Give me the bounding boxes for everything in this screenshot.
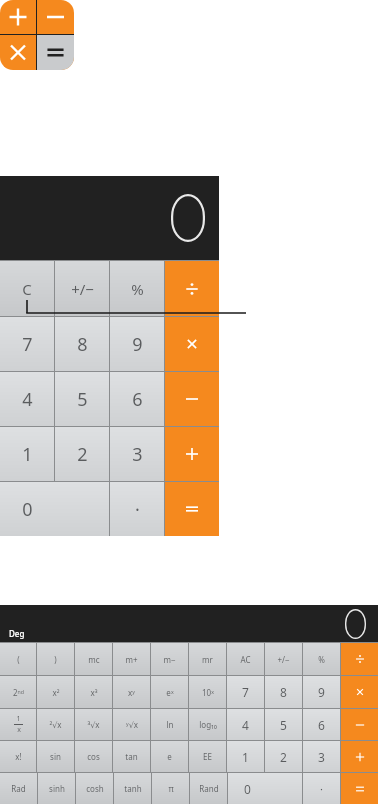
button[interactable]: 6 xyxy=(303,709,340,740)
button[interactable]: x² xyxy=(37,676,74,708)
staticText: m+ xyxy=(125,654,138,665)
button[interactable]: 2 xyxy=(55,427,109,481)
staticText: x xyxy=(17,725,21,735)
staticText: % xyxy=(318,654,325,665)
button[interactable]: tan xyxy=(113,741,150,772)
button[interactable]: mr xyxy=(189,643,226,675)
staticText: log₁₀ xyxy=(199,719,217,730)
button[interactable] xyxy=(341,643,378,675)
button[interactable] xyxy=(165,372,219,426)
button[interactable]: 9 xyxy=(110,317,164,371)
staticText: 8 xyxy=(77,332,88,357)
staticText: x³ xyxy=(90,687,98,698)
button[interactable]: 8 xyxy=(55,317,109,371)
button[interactable]: AC xyxy=(227,643,264,675)
button[interactable]: 4 xyxy=(227,709,264,740)
staticText: +/− xyxy=(71,279,94,299)
button[interactable]: 3 xyxy=(110,427,164,481)
button[interactable] xyxy=(165,317,219,371)
button[interactable]: ) xyxy=(37,643,74,675)
button[interactable]: ln xyxy=(151,709,188,740)
staticText: EE xyxy=(203,751,212,762)
staticText: ln xyxy=(166,719,174,730)
button[interactable]: 5 xyxy=(55,372,109,426)
staticText: tanh xyxy=(124,783,142,794)
button[interactable]: 5 xyxy=(265,709,302,740)
button[interactable]: ²√x xyxy=(37,709,74,740)
staticText: 1 xyxy=(242,749,249,765)
staticText: 10ˣ xyxy=(202,687,214,698)
button[interactable]: · xyxy=(303,773,340,804)
staticText: 0 xyxy=(244,781,251,797)
button[interactable] xyxy=(341,741,378,772)
button[interactable]: 6 xyxy=(110,372,164,426)
button[interactable]: % xyxy=(110,261,164,316)
staticText: ) xyxy=(54,654,57,665)
staticText: eˣ xyxy=(166,687,174,698)
staticText: ³√x xyxy=(87,719,100,730)
staticText: 6 xyxy=(318,717,325,733)
button[interactable]: EE xyxy=(189,741,226,772)
staticText: 0 xyxy=(22,497,33,522)
staticText: cosh xyxy=(86,783,104,794)
button[interactable]: +/− xyxy=(55,261,109,316)
button[interactable]: m+ xyxy=(113,643,150,675)
button[interactable]: ³√x xyxy=(75,709,112,740)
button[interactable]: 0 xyxy=(0,482,109,536)
button[interactable]: tanh xyxy=(114,773,151,804)
staticText: 1 xyxy=(16,714,21,724)
button[interactable]: C xyxy=(0,261,54,316)
button[interactable]: 1 xyxy=(227,741,264,772)
staticText: Deg xyxy=(9,628,25,639)
button[interactable] xyxy=(341,676,378,708)
button[interactable]: cosh xyxy=(76,773,113,804)
button[interactable]: mc xyxy=(75,643,112,675)
staticText: sinh xyxy=(49,783,65,794)
staticText: x² xyxy=(52,687,60,698)
button[interactable]: 8 xyxy=(265,676,302,708)
button[interactable]: sinh xyxy=(38,773,75,804)
button[interactable]: 1 xyxy=(0,427,54,481)
button[interactable] xyxy=(341,773,378,804)
button[interactable] xyxy=(165,261,219,316)
button[interactable]: 4 xyxy=(0,372,54,426)
button[interactable]: eˣ xyxy=(151,676,188,708)
button[interactable]: ʸ√x xyxy=(113,709,150,740)
staticText: mr xyxy=(202,654,213,665)
button[interactable]: Rad xyxy=(0,773,37,804)
button[interactable]: · xyxy=(110,482,164,536)
button[interactable]: cos xyxy=(75,741,112,772)
staticText: 5 xyxy=(280,717,287,733)
button[interactable]: Calculator app icon xyxy=(0,0,74,70)
button[interactable]: sin xyxy=(37,741,74,772)
staticText: · xyxy=(320,781,323,796)
button[interactable]: log₁₀ xyxy=(189,709,226,740)
button[interactable]: 0 xyxy=(228,773,302,804)
button[interactable]: 9 xyxy=(303,676,340,708)
button[interactable]: 7 xyxy=(0,317,54,371)
button[interactable]: π xyxy=(152,773,189,804)
staticText: xʸ xyxy=(128,687,135,698)
button[interactable]: ( xyxy=(0,643,36,675)
button[interactable]: e xyxy=(151,741,188,772)
staticText: AC xyxy=(240,654,251,665)
button[interactable]: x³ xyxy=(75,676,112,708)
button[interactable]: 7 xyxy=(227,676,264,708)
button[interactable]: Rand xyxy=(190,773,227,804)
button[interactable]: +/− xyxy=(265,643,302,675)
button[interactable] xyxy=(341,709,378,740)
button[interactable] xyxy=(165,482,219,536)
button[interactable]: m− xyxy=(151,643,188,675)
staticText: Rad xyxy=(11,783,26,794)
button[interactable]: 1 xyxy=(0,709,36,740)
button[interactable]: % xyxy=(303,643,340,675)
button[interactable] xyxy=(165,427,219,481)
button[interactable]: 2ⁿᵈ xyxy=(0,676,36,708)
button[interactable]: 3 xyxy=(303,741,340,772)
button[interactable]: 10ˣ xyxy=(189,676,226,708)
staticText: 2 xyxy=(280,749,287,765)
button[interactable]: 2 xyxy=(265,741,302,772)
button[interactable]: xʸ xyxy=(113,676,150,708)
button[interactable]: x! xyxy=(0,741,36,772)
staticText: ʸ√x xyxy=(126,719,138,730)
